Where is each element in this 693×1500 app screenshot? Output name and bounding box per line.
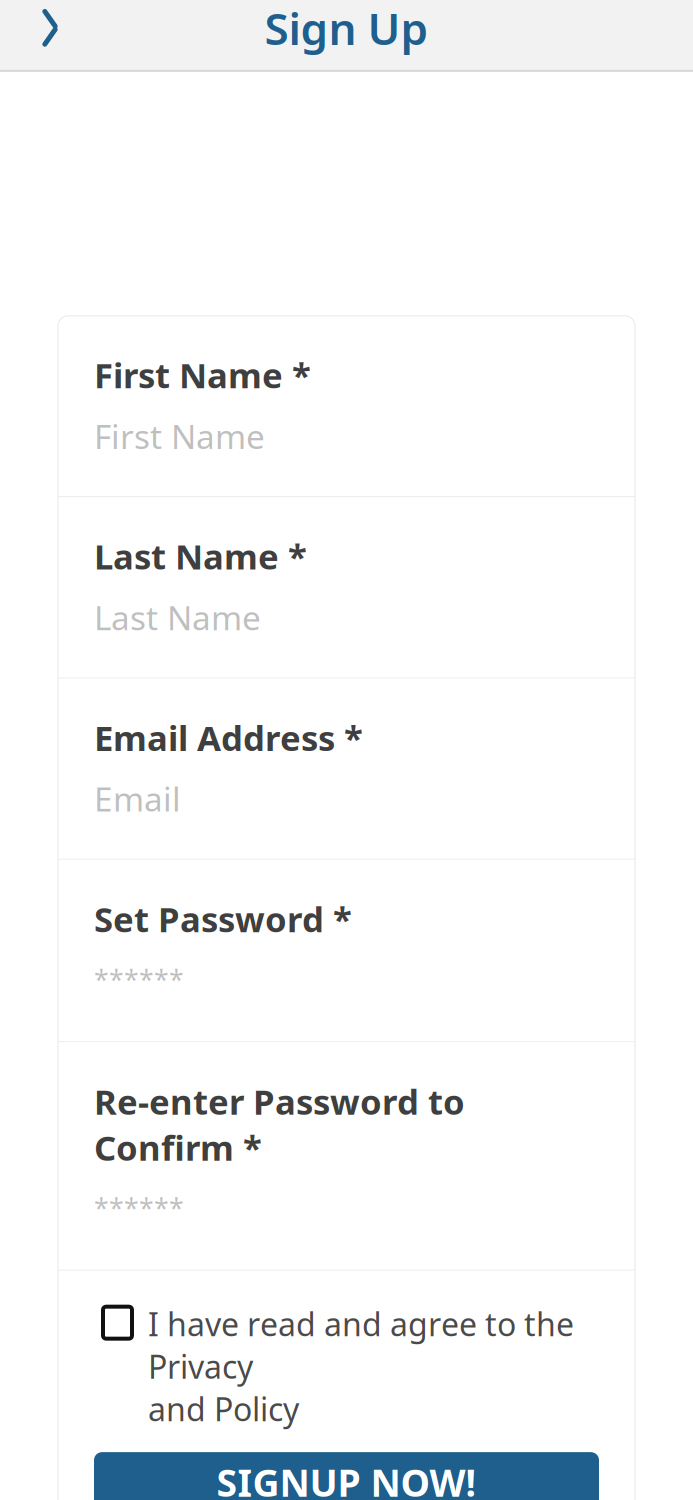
staticText: Last Name * <box>94 533 307 579</box>
staticText: ****** <box>94 962 184 997</box>
staticText: Sign Up <box>264 0 428 57</box>
staticText: Re-enter Password to Confirm * <box>94 1078 465 1170</box>
staticText: I have read and agree to the Privacy and… <box>148 1303 574 1430</box>
staticText: Set Password * <box>94 896 352 942</box>
staticText: First Name <box>94 414 265 458</box>
button[interactable]: SIGNUP NOW! <box>94 1452 599 1500</box>
staticText: ****** <box>94 1190 184 1226</box>
staticText: Last Name <box>94 595 261 639</box>
staticText: Email <box>94 776 181 821</box>
button[interactable]: Back <box>22 0 78 63</box>
staticText: First Name * <box>94 352 311 398</box>
staticText: SIGNUP NOW! <box>216 1457 476 1500</box>
staticText: Email Address * <box>94 714 363 760</box>
button[interactable]: I have read and agree to the Privacy and… <box>58 1271 635 1444</box>
